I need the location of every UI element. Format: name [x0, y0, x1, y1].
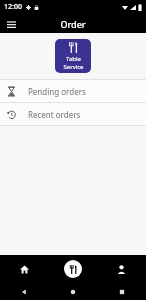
- button[interactable]: Back: [0, 284, 48, 300]
- button[interactable]: Home: [48, 284, 97, 300]
- button[interactable]: Home: [0, 255, 48, 284]
- staticText: Recent orders: [28, 109, 81, 120]
- button[interactable]: Recent orders: [0, 103, 146, 125]
- staticText: Order: [60, 18, 86, 30]
- staticText: 12:00: [4, 2, 22, 12]
- button[interactable]: Account: [97, 255, 146, 284]
- button[interactable]: Recent apps: [97, 284, 146, 300]
- button[interactable]: Open navigation menu: [3, 16, 19, 32]
- button[interactable]: Table service orders: [64, 260, 82, 278]
- staticText: Service: [63, 63, 84, 71]
- button[interactable]: Pending orders: [0, 80, 146, 102]
- staticText: Table: [66, 55, 81, 63]
- button[interactable]: Table: [55, 39, 91, 73]
- staticText: Pending orders: [28, 86, 86, 97]
